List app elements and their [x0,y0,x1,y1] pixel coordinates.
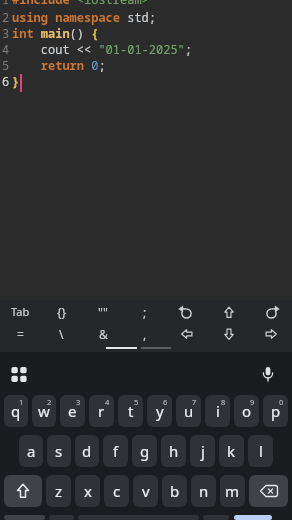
button[interactable] [249,475,288,507]
button[interactable] [250,323,292,345]
button[interactable]: n [191,475,216,507]
staticText: q [11,401,21,421]
button[interactable]: j [190,435,215,467]
staticText: 2 [47,397,52,407]
staticText: c [113,481,121,501]
staticText: #include <iostream> [12,0,149,7]
button[interactable]: w [32,395,56,427]
staticText: e [68,401,77,421]
button[interactable]: d [75,435,99,467]
button[interactable] [250,300,292,323]
staticText: d [82,441,92,461]
button[interactable] [49,515,74,520]
staticText: v [142,481,150,501]
button[interactable] [4,515,45,520]
button[interactable]: k [219,435,244,467]
button[interactable] [4,475,42,507]
staticText: f [113,441,119,461]
button[interactable]: x [75,475,100,507]
staticText: & [99,326,108,342]
button[interactable]: b [162,475,187,507]
staticText: 8 [221,397,226,407]
button[interactable]: i [205,395,230,427]
staticText: r [98,401,105,421]
staticText: 5 [134,397,139,407]
staticText: n [199,481,209,501]
staticText: {} [57,304,67,320]
button[interactable]: "" [82,300,124,323]
button[interactable]: g [132,435,157,467]
staticText: y [156,401,164,421]
button[interactable]: o [234,395,259,427]
staticText: k [227,441,236,461]
staticText: using namespace std; [12,9,157,25]
button[interactable]: l [248,435,273,467]
staticText: 4 [2,41,10,57]
button[interactable]: h [161,435,186,467]
button[interactable]: u [176,395,201,427]
staticText: "" [98,304,108,320]
staticText: return 0; [12,57,106,73]
staticText: } [12,73,20,89]
button[interactable]: e [60,395,85,427]
button[interactable]: p [263,395,288,427]
button[interactable]: = [0,323,41,345]
button[interactable]: f [103,435,128,467]
staticText: o [242,401,252,421]
button[interactable] [208,323,250,345]
button[interactable]: a [19,435,43,467]
button[interactable]: z [46,475,71,507]
staticText: l [259,441,263,461]
staticText: 6 [163,397,168,407]
staticText: 9 [250,397,255,407]
button[interactable]: c [104,475,129,507]
button[interactable] [203,515,229,520]
button[interactable]: t [118,395,143,427]
staticText: Tab [11,304,30,319]
staticText: x [84,481,92,501]
button[interactable]: {} [41,300,82,323]
button[interactable] [3,352,35,395]
staticText: h [169,441,179,461]
staticText: 5 [2,57,10,73]
button[interactable]: , [124,323,166,345]
button[interactable] [252,352,284,395]
staticText: 6 [2,73,10,89]
button[interactable]: & [82,323,124,345]
button[interactable]: m [220,475,245,507]
staticText: 7 [192,397,197,407]
staticText: z [55,481,63,501]
staticText: b [170,481,180,501]
staticText: w [38,401,50,421]
button[interactable]: \ [41,323,82,345]
staticText: a [27,441,36,461]
staticText: i [216,401,220,421]
button[interactable]: r [89,395,114,427]
staticText: 4 [105,397,110,407]
staticText: 3 [2,25,10,41]
button[interactable]: y [147,395,172,427]
button[interactable] [234,515,272,520]
staticText: g [140,441,150,461]
staticText: u [184,401,194,421]
staticText: \ [59,326,64,342]
button[interactable]: Tab [0,300,41,323]
staticText: int main() { [12,25,99,41]
button[interactable]: v [133,475,158,507]
staticText: = [17,326,24,342]
button[interactable] [208,300,250,323]
staticText: j [201,441,205,461]
button[interactable]: ; [124,300,166,323]
button[interactable] [166,300,208,323]
staticText: 1 [19,397,24,407]
staticText: , [143,326,147,342]
staticText: 1 [2,0,10,7]
button[interactable]: s [47,435,71,467]
button[interactable] [166,323,208,345]
staticText: 2 [2,9,10,25]
staticText: cout << "01-01-2025"; [12,41,193,57]
staticText: ; [143,304,147,320]
staticText: t [128,401,134,421]
button[interactable]: q [4,395,28,427]
